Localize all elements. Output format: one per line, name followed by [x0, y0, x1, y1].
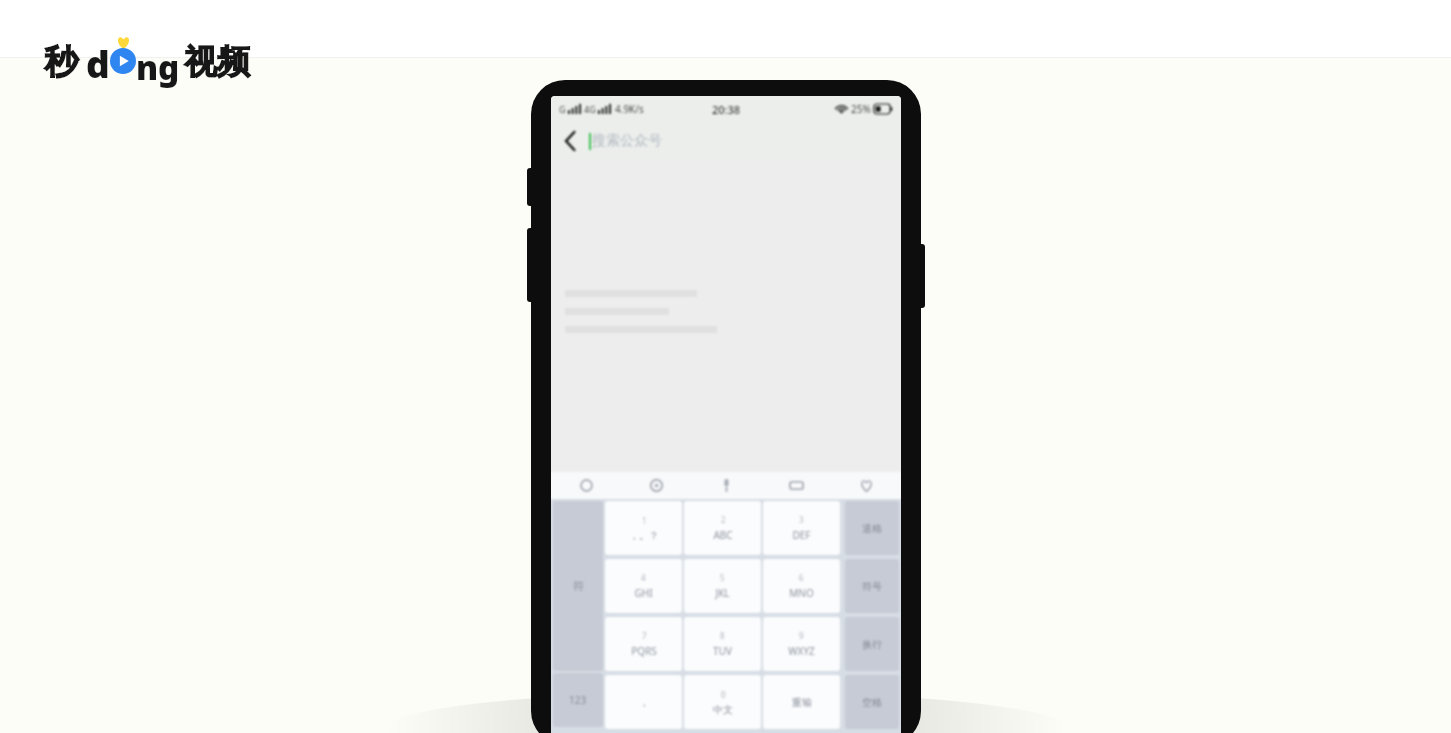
- staticText: 4: [641, 572, 646, 583]
- staticText: 5: [720, 572, 725, 583]
- staticText: 2: [721, 514, 726, 525]
- staticText: TUV: [713, 644, 732, 658]
- staticText: 空格: [862, 696, 882, 709]
- staticText: 3: [799, 514, 804, 525]
- staticText: 符: [573, 579, 584, 593]
- staticText: 4G: [584, 103, 596, 115]
- button[interactable]: 重输: [763, 675, 840, 729]
- staticText: 0: [721, 689, 726, 700]
- staticText: 重输: [792, 696, 812, 709]
- button[interactable]: 换行: [845, 617, 899, 671]
- button[interactable]: 9: [763, 617, 840, 671]
- staticText: 视频: [184, 41, 250, 83]
- staticText: PQRS: [631, 644, 657, 658]
- staticText: 123: [569, 693, 587, 707]
- staticText: ，: [639, 696, 649, 709]
- staticText: 20:38: [712, 102, 741, 117]
- staticText: 7: [642, 630, 647, 641]
- button[interactable]: 4: [605, 559, 682, 613]
- button[interactable]: Keyboard layout: [761, 472, 831, 499]
- staticText: ng: [136, 45, 180, 90]
- button[interactable]: Back: [551, 122, 589, 160]
- staticText: JKL: [715, 586, 730, 600]
- button[interactable]: Voice input: [691, 472, 761, 499]
- staticText: 符号: [862, 580, 882, 593]
- staticText: 换行: [862, 638, 882, 651]
- button[interactable]: ，: [605, 675, 682, 729]
- staticText: 8: [720, 630, 725, 641]
- staticText: ABC: [713, 528, 733, 542]
- button[interactable]: 0: [684, 675, 761, 729]
- staticText: 25%: [851, 102, 871, 116]
- button[interactable]: 8: [684, 617, 761, 671]
- button[interactable]: 1: [605, 501, 682, 555]
- staticText: 中文: [713, 703, 733, 716]
- button[interactable]: 空格: [845, 675, 899, 729]
- staticText: ，。？: [629, 529, 659, 542]
- button[interactable]: 3: [763, 501, 840, 555]
- staticText: 退格: [862, 522, 882, 535]
- button[interactable]: 退格: [845, 501, 899, 555]
- staticText: WXYZ: [788, 644, 815, 658]
- button[interactable]: Emoji: [551, 472, 621, 499]
- staticText: G: [559, 103, 566, 115]
- button[interactable]: Favourites: [831, 472, 901, 499]
- staticText: 秒: [44, 41, 78, 84]
- staticText: DEF: [792, 528, 811, 542]
- staticText: MNO: [789, 586, 814, 600]
- button[interactable]: 123: [553, 673, 603, 727]
- button[interactable]: 符号: [845, 559, 899, 613]
- staticText: 1: [642, 515, 647, 526]
- staticText: 4.9K/s: [615, 102, 644, 116]
- button[interactable]: 7: [605, 617, 682, 671]
- button[interactable]: 搜索公众号: [589, 122, 901, 160]
- staticText: 搜索公众号: [592, 132, 662, 150]
- staticText: 9: [799, 630, 804, 641]
- staticText: GHI: [634, 586, 653, 600]
- button[interactable]: 5: [684, 559, 761, 613]
- button[interactable]: Settings: [621, 472, 691, 499]
- button[interactable]: 2: [684, 501, 761, 555]
- staticText: d: [86, 38, 110, 88]
- button[interactable]: 6: [763, 559, 840, 613]
- staticText: 6: [799, 572, 804, 583]
